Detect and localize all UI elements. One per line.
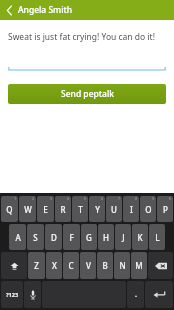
button[interactable]: L — [149, 224, 165, 250]
button[interactable]: D — [45, 224, 62, 250]
button[interactable]: B — [97, 252, 113, 279]
button[interactable]: Backspace — [148, 252, 173, 279]
staticText: W — [24, 204, 32, 215]
staticText: Z — [34, 260, 39, 271]
staticText: 9 — [152, 196, 155, 201]
staticText: G — [86, 232, 92, 243]
staticText: 2 — [32, 196, 35, 201]
button[interactable]: O — [140, 196, 156, 222]
staticText: U — [111, 204, 117, 215]
button[interactable]: T — [72, 196, 88, 222]
button[interactable]: A — [9, 224, 26, 250]
staticText: K — [137, 232, 143, 243]
staticText: O — [145, 204, 152, 215]
button[interactable]: M — [131, 252, 147, 279]
button[interactable]: Y — [89, 196, 105, 222]
button[interactable]: Z — [28, 252, 45, 279]
staticText: 6 — [101, 196, 104, 201]
staticText: M — [135, 260, 143, 271]
button[interactable]: K — [132, 224, 148, 250]
button[interactable]: H — [98, 224, 114, 250]
staticText: 3 — [50, 196, 53, 201]
staticText: 8 — [135, 196, 138, 201]
staticText: 7 — [118, 196, 121, 201]
button[interactable]: I — [123, 196, 139, 222]
staticText: 5 — [84, 196, 87, 201]
staticText: Sweat is just fat crying! You can do it! — [8, 31, 155, 43]
button[interactable]: ?123 — [1, 281, 23, 308]
staticText: . — [135, 290, 137, 300]
button[interactable]: Send peptalk — [8, 84, 166, 104]
staticText: A — [15, 232, 21, 243]
button[interactable]: R — [55, 196, 71, 222]
button[interactable]: N — [114, 252, 130, 279]
staticText: N — [119, 260, 126, 271]
button[interactable]: S — [27, 224, 44, 250]
staticText: V — [86, 260, 91, 271]
staticText: ?123 — [6, 291, 19, 298]
staticText: 0 — [169, 196, 172, 201]
staticText: H — [103, 232, 109, 243]
staticText: D — [51, 232, 57, 243]
button[interactable]: Q — [1, 196, 18, 222]
button[interactable]: Back — [0, 0, 18, 20]
button[interactable]: W — [19, 196, 36, 222]
staticText: Send peptalk — [61, 88, 114, 100]
button[interactable]: P — [157, 196, 173, 222]
staticText: T — [78, 204, 83, 215]
staticText: 1 — [14, 196, 17, 201]
button[interactable]: Enter — [145, 281, 173, 308]
staticText: J — [122, 232, 125, 243]
button[interactable]: V — [80, 252, 96, 279]
button[interactable]: J — [115, 224, 131, 250]
button[interactable]: . — [127, 281, 144, 308]
button[interactable]: C — [63, 252, 79, 279]
button[interactable]: F — [63, 224, 80, 250]
staticText: S — [33, 232, 38, 243]
staticText: X — [52, 260, 57, 271]
staticText: Y — [95, 204, 100, 215]
staticText: 4 — [67, 196, 70, 201]
button[interactable]: Shift — [1, 252, 27, 279]
staticText: I — [130, 204, 133, 215]
staticText: E — [43, 204, 48, 215]
staticText: P — [163, 204, 168, 215]
staticText: L — [155, 232, 160, 243]
staticText: B — [102, 260, 108, 271]
button[interactable]: E — [37, 196, 54, 222]
button[interactable]: X — [46, 252, 62, 279]
button[interactable]: Voice input — [24, 281, 41, 308]
staticText: Angela Smith — [18, 4, 73, 16]
button[interactable]: U — [106, 196, 122, 222]
staticText: C — [68, 260, 74, 271]
staticText: Q — [6, 204, 13, 215]
staticText: F — [69, 232, 74, 243]
button[interactable]: G — [81, 224, 97, 250]
staticText: R — [60, 204, 66, 215]
button[interactable] — [8, 59, 166, 71]
